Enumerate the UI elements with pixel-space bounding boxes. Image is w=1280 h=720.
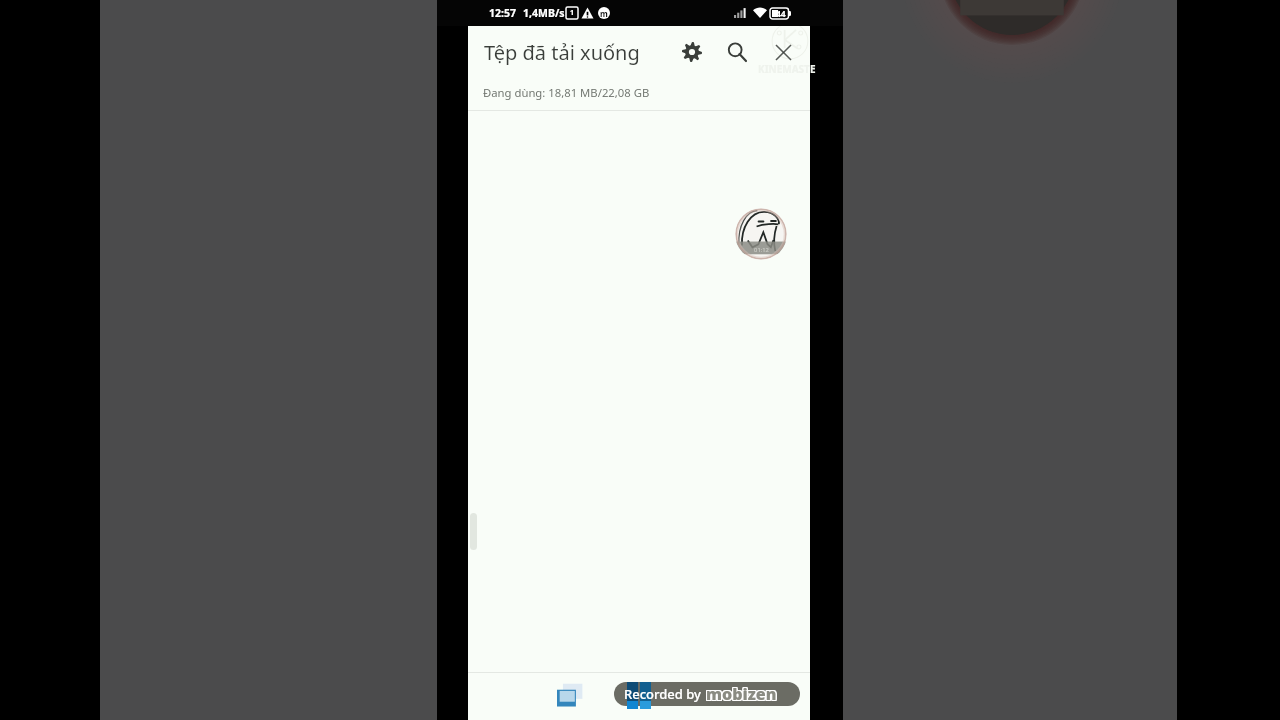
button[interactable]: Close <box>760 33 802 75</box>
staticText: mobizen <box>706 682 777 704</box>
button[interactable]: Recent apps <box>557 683 584 707</box>
staticText: 1,4MB/s <box>523 6 565 20</box>
staticText: 01:12 <box>754 246 769 254</box>
staticText: Tệp đã tải xuống <box>484 39 640 66</box>
staticText: KINEMASTE <box>758 62 816 76</box>
button[interactable]: Floating video bubble <box>735 208 787 260</box>
button[interactable]: Recorded by mobizen watermark <box>614 682 800 706</box>
staticText: mobizen <box>705 682 776 704</box>
staticText: mobizen <box>705 684 776 706</box>
staticText: mobizen <box>705 683 776 705</box>
button[interactable]: Settings <box>671 33 713 75</box>
staticText: mobizen <box>706 684 777 706</box>
staticText: m <box>600 8 608 19</box>
staticText: Recorded by <box>624 685 701 703</box>
staticText: mobizen <box>707 682 778 704</box>
staticText: 44 <box>776 8 786 19</box>
staticText: 12:57 <box>489 6 516 20</box>
staticText: 1 <box>570 8 575 18</box>
staticText: Đang dùng: 18,81 MB/22,08 GB <box>483 85 650 100</box>
button[interactable]: Search <box>716 33 758 75</box>
staticText: mobizen <box>707 684 778 706</box>
staticText: mobizen <box>707 683 778 705</box>
staticText: mobizen <box>706 683 777 705</box>
